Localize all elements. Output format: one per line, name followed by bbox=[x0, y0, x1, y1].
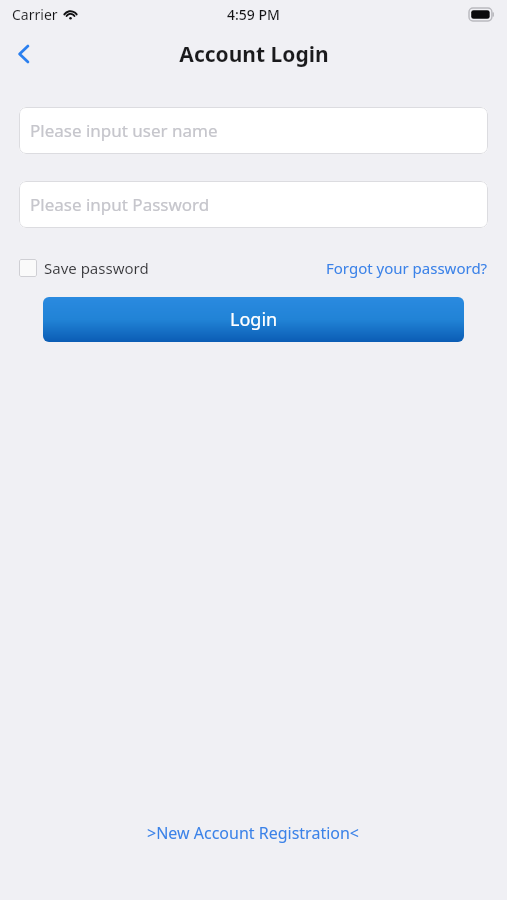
staticText: 4:59 PM bbox=[227, 5, 280, 24]
staticText: Save password bbox=[44, 258, 149, 278]
button[interactable]: >New Account Registration< bbox=[141, 816, 366, 850]
button[interactable]: Please input user name bbox=[19, 107, 488, 154]
button[interactable]: Forgot your password? bbox=[326, 256, 488, 280]
button[interactable]: Please input Password bbox=[19, 181, 488, 228]
staticText: Carrier bbox=[12, 5, 58, 24]
button[interactable]: Save password bbox=[19, 256, 149, 280]
button[interactable]: Login bbox=[43, 297, 464, 342]
staticText: Account Login bbox=[179, 40, 329, 69]
button[interactable]: Back bbox=[0, 30, 48, 78]
staticText: >New Account Registration< bbox=[147, 822, 360, 844]
staticText: Please input Password bbox=[30, 193, 210, 216]
staticText: Forgot your password? bbox=[326, 258, 488, 278]
staticText: Login bbox=[230, 307, 278, 332]
staticText: Please input user name bbox=[30, 119, 218, 142]
